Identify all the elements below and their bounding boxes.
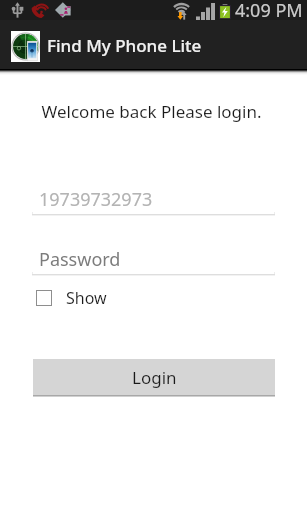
button[interactable]: 19739732973 (32, 183, 275, 214)
button[interactable]: Login (33, 359, 275, 397)
staticText: Login (132, 366, 177, 389)
staticText: 4:09 PM (235, 0, 303, 23)
button[interactable]: App icon, Find My Phone Lite (11, 31, 40, 62)
staticText: Find My Phone Lite (47, 34, 202, 57)
staticText: Show (66, 287, 107, 309)
staticText: Welcome back Please login. (0, 100, 305, 123)
staticText: Password (39, 247, 121, 272)
button[interactable]: Password (32, 243, 275, 274)
staticText: 19739732973 (39, 187, 153, 212)
button[interactable]: Show (33, 286, 107, 310)
